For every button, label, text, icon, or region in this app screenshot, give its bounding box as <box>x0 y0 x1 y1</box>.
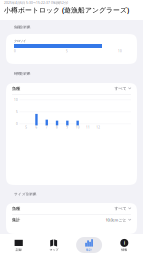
staticText: 5 <box>16 110 18 114</box>
staticText: 0 <box>14 49 16 53</box>
button[interactable]: マップ <box>37 235 70 255</box>
button[interactable]: 魚種 <box>6 83 137 94</box>
button[interactable]: 集計 <box>6 214 137 225</box>
staticText: i <box>124 240 125 246</box>
staticText: 魚種 <box>12 86 20 91</box>
staticText: 7 <box>46 125 48 129</box>
button[interactable]: 記録 <box>2 235 35 255</box>
staticText: 10 <box>76 125 80 129</box>
staticText: 9 <box>66 125 68 129</box>
staticText: 記録 <box>16 248 22 252</box>
button[interactable]: 集計 <box>73 235 106 255</box>
staticText: 魚種別 釣果 <box>14 25 30 29</box>
staticText: 12 <box>96 125 100 129</box>
staticText: マップ <box>49 248 58 252</box>
staticText: 集計 <box>86 248 92 252</box>
staticText: 8 <box>56 125 58 129</box>
staticText: 集計 <box>12 217 20 223</box>
staticText: 5 <box>25 125 27 129</box>
staticText: 10 <box>14 98 18 102</box>
staticText: 情報 <box>121 248 127 252</box>
staticText: すべて <box>114 86 126 91</box>
staticText: 10 <box>118 49 122 53</box>
staticText: 10.0cmごと <box>105 217 126 223</box>
staticText: 時間別 釣果 <box>14 71 30 76</box>
button[interactable]: 魚種 <box>6 203 137 214</box>
staticText: すべて <box>114 206 126 211</box>
staticText: 6 <box>35 125 37 129</box>
staticText: 11 <box>86 125 90 129</box>
staticText: 2025年4月6日 5:30〜15:22:37 (9時間52分) <box>4 1 68 5</box>
staticText: サイズ別 釣果 <box>14 192 36 196</box>
staticText: クロソイ <box>14 39 26 43</box>
staticText: 5 <box>66 49 68 53</box>
staticText: 0 <box>16 122 18 126</box>
staticText: 魚種 <box>12 206 20 211</box>
staticText: 小樽ボートロック (遊漁船アングラーズ) <box>4 5 129 15</box>
button[interactable]: i <box>108 235 141 255</box>
